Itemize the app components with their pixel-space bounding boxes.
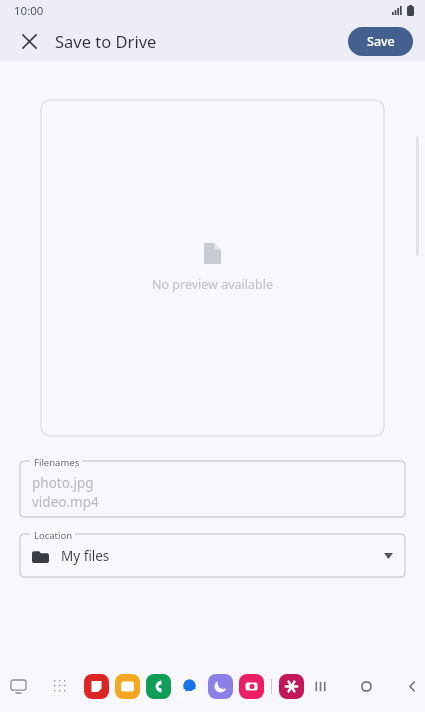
button[interactable]: Recent apps panel xyxy=(4,672,32,700)
button[interactable]: Recent apps xyxy=(307,673,333,699)
staticText: video.mp4 xyxy=(32,493,99,511)
staticText: Filenames xyxy=(34,456,80,469)
button[interactable]: Close xyxy=(12,24,46,58)
button[interactable]: App xyxy=(279,674,304,699)
staticText: My files xyxy=(61,547,110,565)
staticText: Save to Drive xyxy=(55,30,157,52)
button[interactable]: All apps xyxy=(47,673,73,699)
button[interactable]: Home xyxy=(353,673,379,699)
staticText: Location xyxy=(34,529,73,542)
button[interactable]: My files xyxy=(20,534,405,577)
staticText: No preview available xyxy=(152,276,273,293)
button[interactable]: Office xyxy=(84,674,109,699)
staticText: photo.jpg xyxy=(32,474,94,492)
staticText: Save xyxy=(367,33,395,50)
button[interactable]: Files xyxy=(115,674,140,699)
button[interactable]: Camera xyxy=(239,674,264,699)
button[interactable]: Browser xyxy=(208,674,233,699)
staticText: 10:00 xyxy=(14,3,44,19)
button[interactable]: Phone xyxy=(146,674,171,699)
button[interactable]: Back xyxy=(399,673,425,699)
button[interactable]: Save xyxy=(348,27,413,56)
button[interactable]: Messages xyxy=(177,674,202,699)
